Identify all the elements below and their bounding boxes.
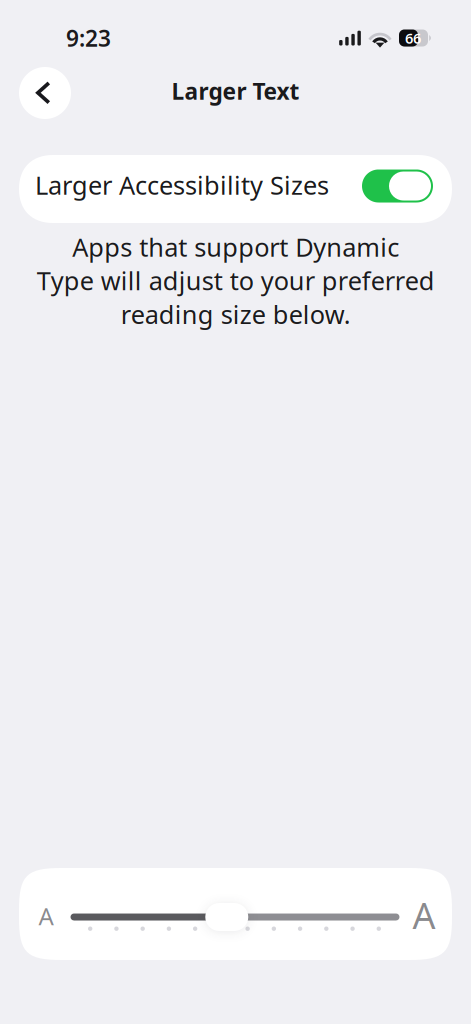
staticText: 9:23 — [66, 23, 111, 53]
staticText: A — [38, 900, 53, 932]
button[interactable]: Back — [19, 67, 71, 119]
staticText: Larger Text — [171, 76, 299, 106]
staticText: A — [412, 891, 435, 939]
staticText: 66 — [405, 28, 421, 48]
staticText: Larger Accessibility Sizes — [35, 168, 329, 202]
button[interactable]: Larger Accessibility Sizes — [19, 155, 452, 223]
staticText: Apps that support Dynamic Type will adju… — [36, 230, 434, 331]
